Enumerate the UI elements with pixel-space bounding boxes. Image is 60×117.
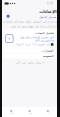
staticText: البحث — [28, 112, 30, 114]
staticText: تسجيل الدخول — [39, 15, 56, 18]
staticText: 9:41 — [47, 2, 54, 5]
staticText: المزيد — [46, 112, 49, 114]
staticText: تفاصيل الحساب — [34, 32, 53, 35]
button[interactable]: الرئيسية — [2, 107, 20, 117]
staticText: الخصوصية — [42, 55, 53, 58]
button[interactable]: تسجيل الدخول — [39, 15, 56, 18]
staticText: لا توجد عناصر حتى الآن — [15, 61, 43, 64]
staticText: المتاحة من هنا بكل سهولة وبدون اي تعقيد — [10, 25, 56, 28]
staticText: مرحبا بك في التطبيق يمكنك تصفح كل الخدما… — [2, 20, 56, 23]
staticText: رقم العضوية ٢٠٢٤ تاريخ الانتهاء — [16, 43, 50, 46]
button[interactable]: الإشعارات — [3, 48, 55, 53]
staticText: الرئيسية — [10, 112, 13, 114]
button[interactable]: تفاصيل الحساب — [3, 30, 55, 48]
button[interactable]: المزيد — [39, 107, 57, 117]
staticText: الإشعارات — [41, 49, 53, 52]
button[interactable]: البحث — [20, 107, 39, 117]
staticText: اخر تحديث للبيانات كان قبل ساعتين من الا… — [19, 36, 53, 42]
staticText: الإعدادات — [39, 9, 56, 14]
button[interactable]: Account — [6, 15, 10, 18]
button[interactable]: الخصوصية — [3, 54, 55, 59]
